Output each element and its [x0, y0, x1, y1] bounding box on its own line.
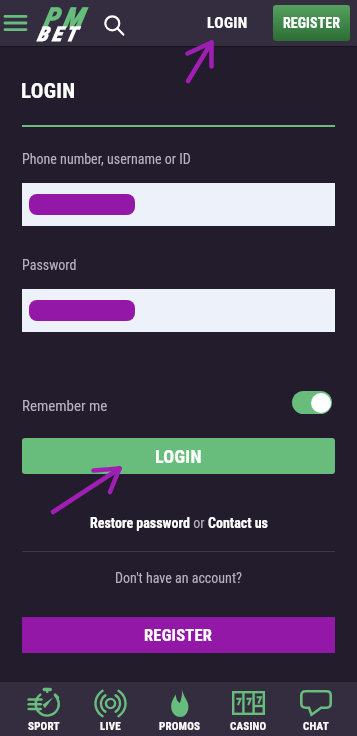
staticText: Phone number, username or ID — [22, 151, 191, 167]
button[interactable]: CASINO — [214, 682, 282, 736]
staticText: SPORT — [28, 720, 60, 733]
staticText: CHAT — [303, 720, 329, 733]
staticText: LOGIN — [21, 79, 76, 104]
staticText: LOGIN — [155, 446, 202, 467]
button[interactable]: LOGIN — [22, 438, 335, 474]
staticText: Remember me — [22, 397, 108, 415]
staticText: REGISTER — [283, 15, 341, 31]
staticText: REGISTER — [144, 626, 213, 645]
button[interactable]: REGISTER — [22, 617, 335, 653]
staticText: Don't have an account? — [0, 570, 357, 586]
button[interactable]: CHAT — [282, 682, 350, 736]
button[interactable] — [22, 289, 335, 332]
button[interactable]: Restore password — [90, 515, 190, 531]
button[interactable]: PROMOS — [145, 682, 214, 736]
button[interactable]: LOGIN — [198, 5, 256, 41]
staticText: LOGIN — [207, 14, 248, 32]
button[interactable]: LIVE — [76, 682, 144, 736]
staticText: CASINO — [230, 720, 267, 733]
button[interactable]: SPORT — [9, 682, 78, 736]
staticText: Password — [22, 257, 77, 273]
button[interactable]: Remember me — [292, 391, 332, 414]
staticText: BET — [37, 22, 81, 45]
button[interactable]: Search — [98, 8, 128, 38]
button[interactable]: Menu — [0, 5, 30, 41]
button[interactable]: PM BET home — [36, 4, 96, 42]
button[interactable]: REGISTER — [273, 5, 350, 41]
button[interactable]: Contact us — [208, 515, 268, 531]
button[interactable] — [22, 183, 335, 226]
staticText: LIVE — [100, 720, 121, 733]
staticText: PM — [43, 2, 88, 34]
staticText: PROMOS — [159, 720, 201, 733]
staticText: or — [190, 515, 208, 531]
